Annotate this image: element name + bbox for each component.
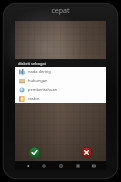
staticText: nada dering	[28, 69, 51, 74]
button[interactable]: Back	[23, 161, 32, 170]
staticText: hubungan	[28, 78, 48, 83]
staticText: raskin	[28, 96, 40, 101]
button[interactable]: Screenshot	[89, 161, 98, 170]
button[interactable]: raskin	[15, 94, 106, 103]
button[interactable]: pemberitahuan	[15, 85, 106, 94]
button[interactable]: hubungan	[15, 76, 106, 85]
button[interactable]: Cancel	[81, 147, 92, 158]
button[interactable]: nada dering	[15, 67, 106, 76]
button[interactable]: Confirm	[29, 147, 40, 158]
button[interactable]: Home	[39, 161, 48, 170]
button[interactable]: Menu	[73, 161, 82, 170]
button[interactable]: Recents	[56, 161, 65, 170]
staticText: cepat	[51, 6, 70, 16]
staticText: diskrit sebagai	[18, 61, 46, 66]
staticText: pemberitahuan	[28, 87, 58, 92]
